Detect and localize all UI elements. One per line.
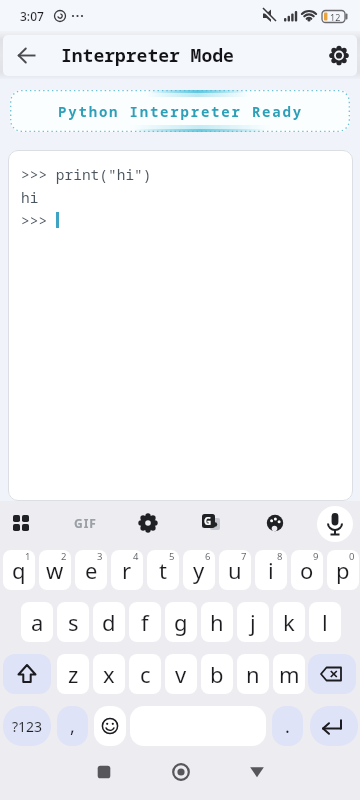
staticText: 1 [25, 550, 31, 563]
staticText: h [210, 607, 224, 637]
button[interactable]: e [75, 550, 107, 590]
button[interactable]: l [309, 602, 341, 642]
button[interactable]: b [201, 654, 233, 694]
staticText: >>> [21, 210, 56, 230]
button[interactable] [69, 507, 101, 541]
button[interactable]: u [219, 550, 251, 590]
staticText: 3 [97, 550, 103, 563]
button[interactable] [169, 760, 193, 784]
button[interactable]: k [273, 602, 305, 642]
button[interactable] [94, 706, 126, 746]
staticText: , [70, 714, 75, 739]
button[interactable]: f [129, 602, 161, 642]
staticText: c [140, 659, 151, 689]
button[interactable] [132, 507, 164, 541]
staticText: 4 [133, 550, 139, 563]
staticText: f [141, 607, 149, 637]
button[interactable]: m [273, 654, 305, 694]
staticText: >>> print("hi") [21, 164, 152, 184]
staticText: u [228, 555, 242, 585]
staticText: 9 [313, 550, 319, 563]
staticText: r [122, 555, 132, 585]
staticText: Python Interpreter Ready [58, 102, 303, 121]
staticText: Interpreter Mode [61, 43, 234, 68]
button[interactable]: y [183, 550, 215, 590]
staticText: 12 [330, 11, 341, 23]
staticText: p [336, 555, 350, 585]
button[interactable]: g [165, 602, 197, 642]
staticText: GIF [74, 515, 97, 531]
staticText: y [193, 555, 205, 585]
staticText: i [268, 555, 274, 585]
staticText: 0 [349, 550, 355, 563]
button[interactable] [130, 706, 266, 746]
staticText: j [250, 607, 256, 637]
button[interactable] [323, 35, 357, 76]
button[interactable]: Python Interpreter Ready [10, 90, 350, 132]
staticText: e [85, 555, 98, 585]
staticText: n [246, 659, 260, 689]
button[interactable]: >>> print("hi") [8, 150, 353, 501]
staticText: ?123 [12, 717, 43, 736]
staticText: b [210, 659, 224, 689]
button[interactable]: s [57, 602, 89, 642]
button[interactable]: j [237, 602, 269, 642]
button[interactable] [92, 760, 116, 784]
button[interactable]: t [147, 550, 179, 590]
button[interactable]: c [129, 654, 161, 694]
staticText: d [102, 607, 116, 637]
staticText: x [103, 659, 115, 689]
staticText: G [204, 514, 212, 528]
button[interactable]: a [21, 602, 53, 642]
button[interactable]: q [3, 550, 35, 590]
button[interactable]: x [93, 654, 125, 694]
staticText: g [174, 607, 188, 637]
staticText: m [279, 659, 300, 689]
button[interactable]: w [39, 550, 71, 590]
staticText: 7 [241, 550, 247, 563]
button[interactable] [310, 706, 358, 746]
staticText: k [283, 607, 295, 637]
button[interactable] [317, 506, 353, 542]
button[interactable]: o [291, 550, 323, 590]
button[interactable] [259, 507, 291, 541]
button[interactable]: i [255, 550, 287, 590]
staticText: s [68, 607, 79, 637]
button[interactable]: h [201, 602, 233, 642]
button[interactable]: p [327, 550, 359, 590]
button[interactable] [5, 507, 37, 541]
staticText: 6 [205, 550, 211, 563]
button[interactable] [308, 654, 356, 694]
staticText: 2 [61, 550, 67, 563]
button[interactable]: , [57, 706, 88, 746]
button[interactable]: v [165, 654, 197, 694]
staticText: . [285, 714, 290, 739]
staticText: z [68, 659, 79, 689]
button[interactable]: z [57, 654, 89, 694]
staticText: w [46, 555, 64, 585]
staticText: q [12, 555, 26, 585]
button[interactable] [3, 654, 51, 694]
button[interactable]: . [272, 706, 303, 746]
button[interactable]: r [111, 550, 143, 590]
button[interactable] [195, 507, 227, 541]
staticText: a [31, 607, 44, 637]
button[interactable] [11, 35, 43, 76]
staticText: l [322, 607, 328, 637]
staticText: hi [21, 187, 39, 207]
button[interactable]: d [93, 602, 125, 642]
button[interactable]: ?123 [3, 706, 51, 746]
button[interactable]: n [237, 654, 269, 694]
button[interactable] [245, 760, 269, 784]
staticText: o [300, 555, 314, 585]
staticText: t [159, 555, 167, 585]
staticText: 8 [277, 550, 283, 563]
staticText: v [175, 659, 187, 689]
staticText: 5 [169, 550, 175, 563]
staticText: 3:07 [20, 8, 44, 24]
